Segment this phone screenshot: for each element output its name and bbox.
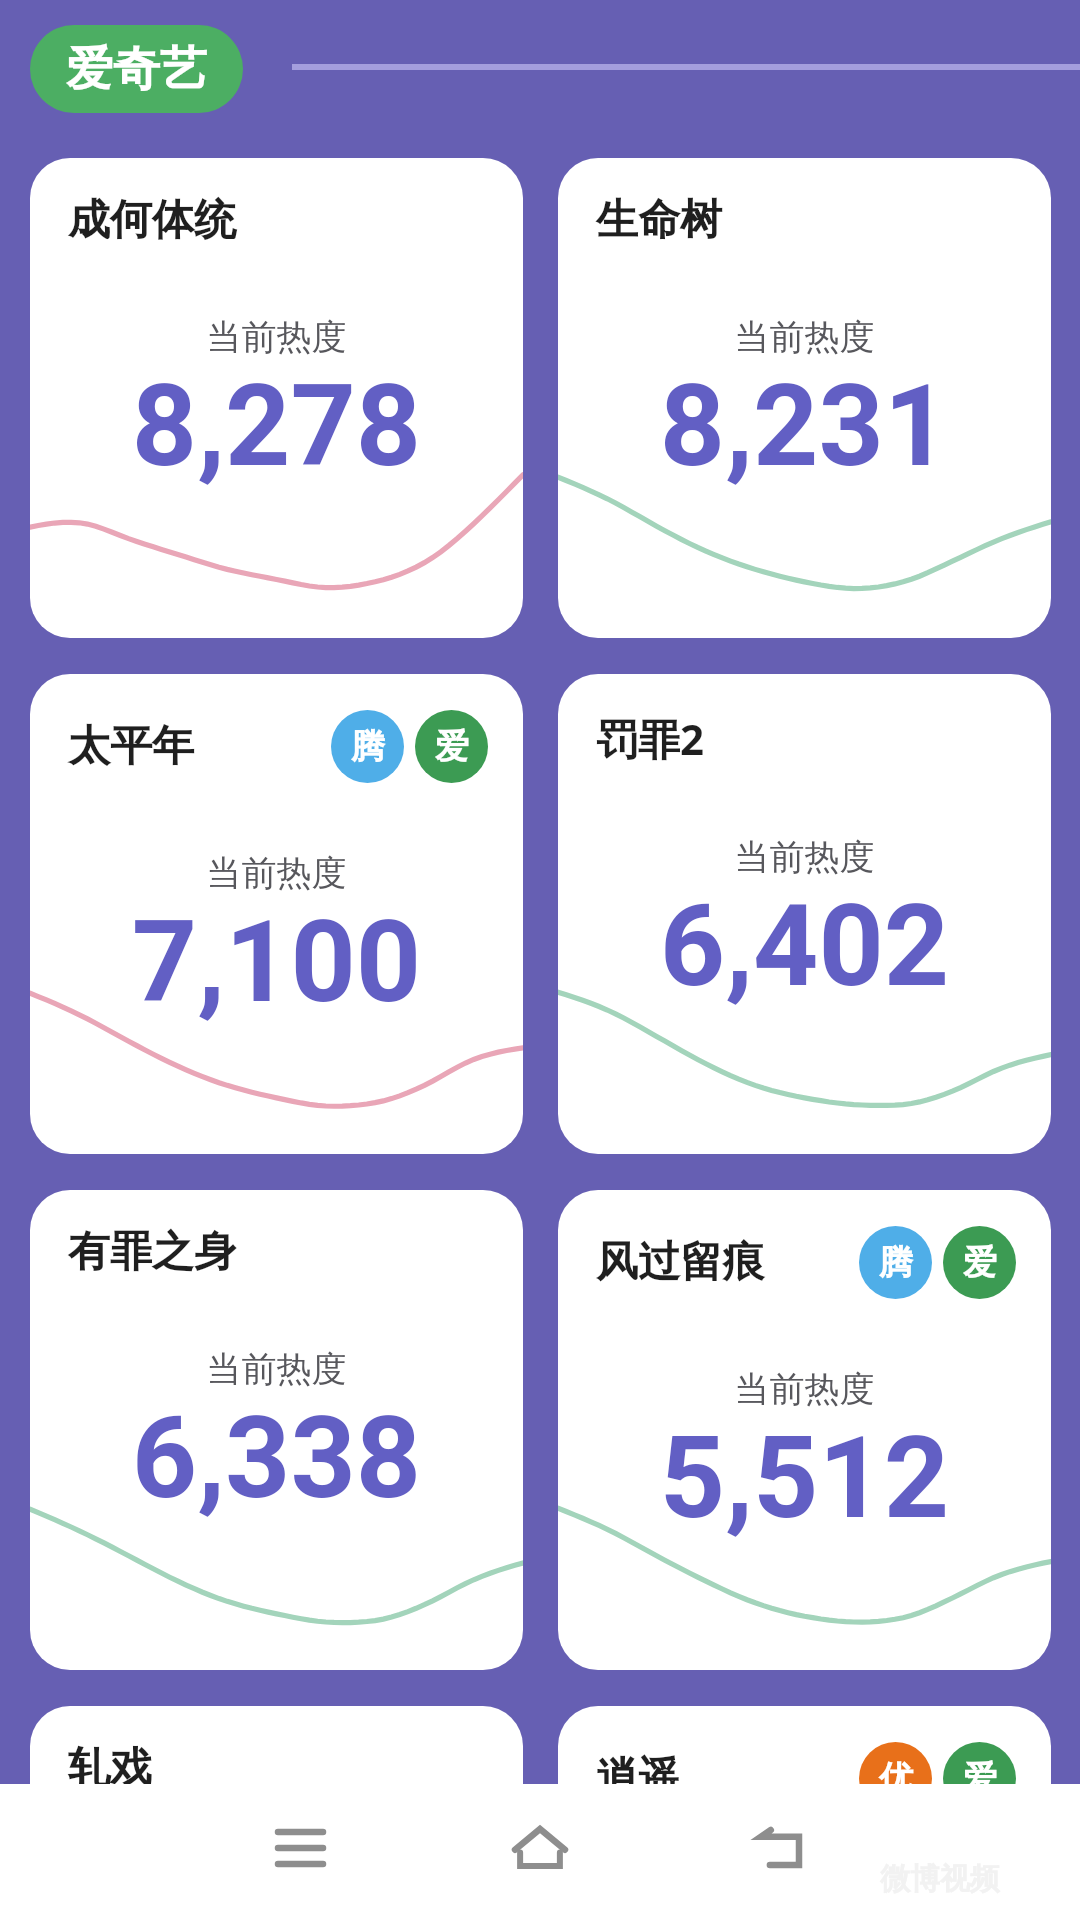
staticText: 爱 (963, 1757, 997, 1800)
staticText: 当前热度 (558, 315, 1051, 359)
button[interactable]: 罚罪2 (558, 674, 1051, 1154)
button[interactable]: 有罪之身 (30, 1190, 523, 1670)
staticText: 8,231 (558, 359, 1051, 493)
staticText: 当前热度 (30, 315, 523, 359)
button[interactable]: 风过留痕 (558, 1190, 1051, 1670)
button[interactable]: Back (720, 1784, 840, 1911)
staticText: 成何体统 (68, 194, 236, 247)
staticText: 爱 (963, 1241, 997, 1284)
staticText: 6,338 (30, 1391, 523, 1525)
button[interactable]: Home (480, 1784, 600, 1911)
staticText: 腾 (879, 1241, 913, 1284)
staticText: 逍遥 (596, 1752, 680, 1805)
staticText: 优 (879, 1757, 913, 1800)
staticText: 罚罪2 (596, 710, 705, 767)
staticText: 当前热度 (30, 851, 523, 895)
staticText: 当前热度 (30, 1347, 523, 1391)
staticText: 爱奇艺 (66, 40, 207, 99)
staticText: 生命树 (596, 194, 722, 247)
staticText: 风过留痕 (596, 1236, 764, 1289)
staticText: 太平年 (68, 720, 194, 773)
staticText: 6,402 (558, 879, 1051, 1013)
button[interactable]: 成何体统 (30, 158, 523, 638)
button[interactable]: 生命树 (558, 158, 1051, 638)
staticText: 腾 (351, 725, 385, 768)
button[interactable]: 逍遥 (558, 1706, 1051, 1911)
staticText: 5,512 (558, 1411, 1051, 1545)
staticText: 8,278 (30, 359, 523, 493)
button[interactable]: 轧戏 (30, 1706, 523, 1911)
button[interactable]: 爱奇艺 (30, 25, 243, 113)
staticText: 微博视频 (880, 1860, 1000, 1898)
staticText: 当前热度 (558, 835, 1051, 879)
staticText: 爱 (435, 725, 469, 768)
button[interactable]: 太平年 (30, 674, 523, 1154)
staticText: 有罪之身 (68, 1226, 236, 1279)
staticText: 轧戏 (68, 1742, 152, 1795)
button[interactable]: Recent apps (240, 1784, 360, 1911)
staticText: 7,100 (30, 895, 523, 1029)
staticText: 当前热度 (558, 1367, 1051, 1411)
